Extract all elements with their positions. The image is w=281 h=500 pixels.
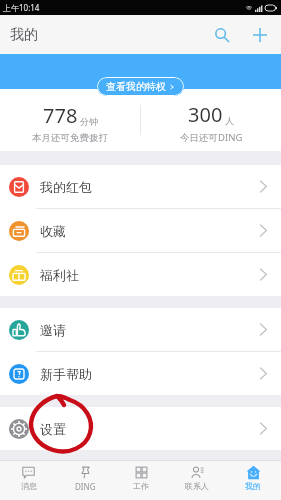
button[interactable]: 我的 [225,461,281,500]
staticText: 778 [43,102,78,129]
staticText: 今日还可DING [180,131,243,144]
staticText: 查看我的特权 [106,80,166,93]
button[interactable]: 消息 [0,461,57,500]
staticText: 消息 [21,481,37,491]
button[interactable]: 福利社 [0,253,281,296]
staticText: 本月还可免费拨打 [32,132,108,144]
staticText: 上午10:14 [3,2,40,13]
button[interactable]: 778 [0,89,140,151]
staticText: 收藏 [40,223,66,239]
button[interactable]: 工作 [113,461,169,500]
staticText: 人 [225,115,234,126]
button[interactable]: 联系人 [169,461,225,500]
staticText: 邀请 [40,322,66,338]
staticText: 工作 [133,481,149,491]
staticText: 新手帮助 [40,366,92,382]
staticText: 我的 [245,481,261,491]
staticText: 我的红包 [40,179,92,195]
staticText: DING [75,481,96,492]
staticText: 设置 [40,421,66,437]
staticText: 我的 [10,26,38,44]
staticText: 福利社 [40,267,79,283]
button[interactable]: 300 [141,89,281,151]
button[interactable]: Add [241,16,279,54]
staticText: 联系人 [185,481,209,491]
staticText: 300 [188,101,223,128]
button[interactable]: 查看我的特权 [97,77,184,96]
button[interactable]: 邀请 [0,308,281,351]
button[interactable]: DING [57,461,113,500]
button[interactable]: 新手帮助 [0,352,281,395]
button[interactable]: 收藏 [0,209,281,252]
button[interactable]: Search [203,16,241,54]
staticText: 分钟 [80,116,98,127]
button[interactable]: 设置 [0,407,281,450]
button[interactable]: 我的红包 [0,165,281,208]
